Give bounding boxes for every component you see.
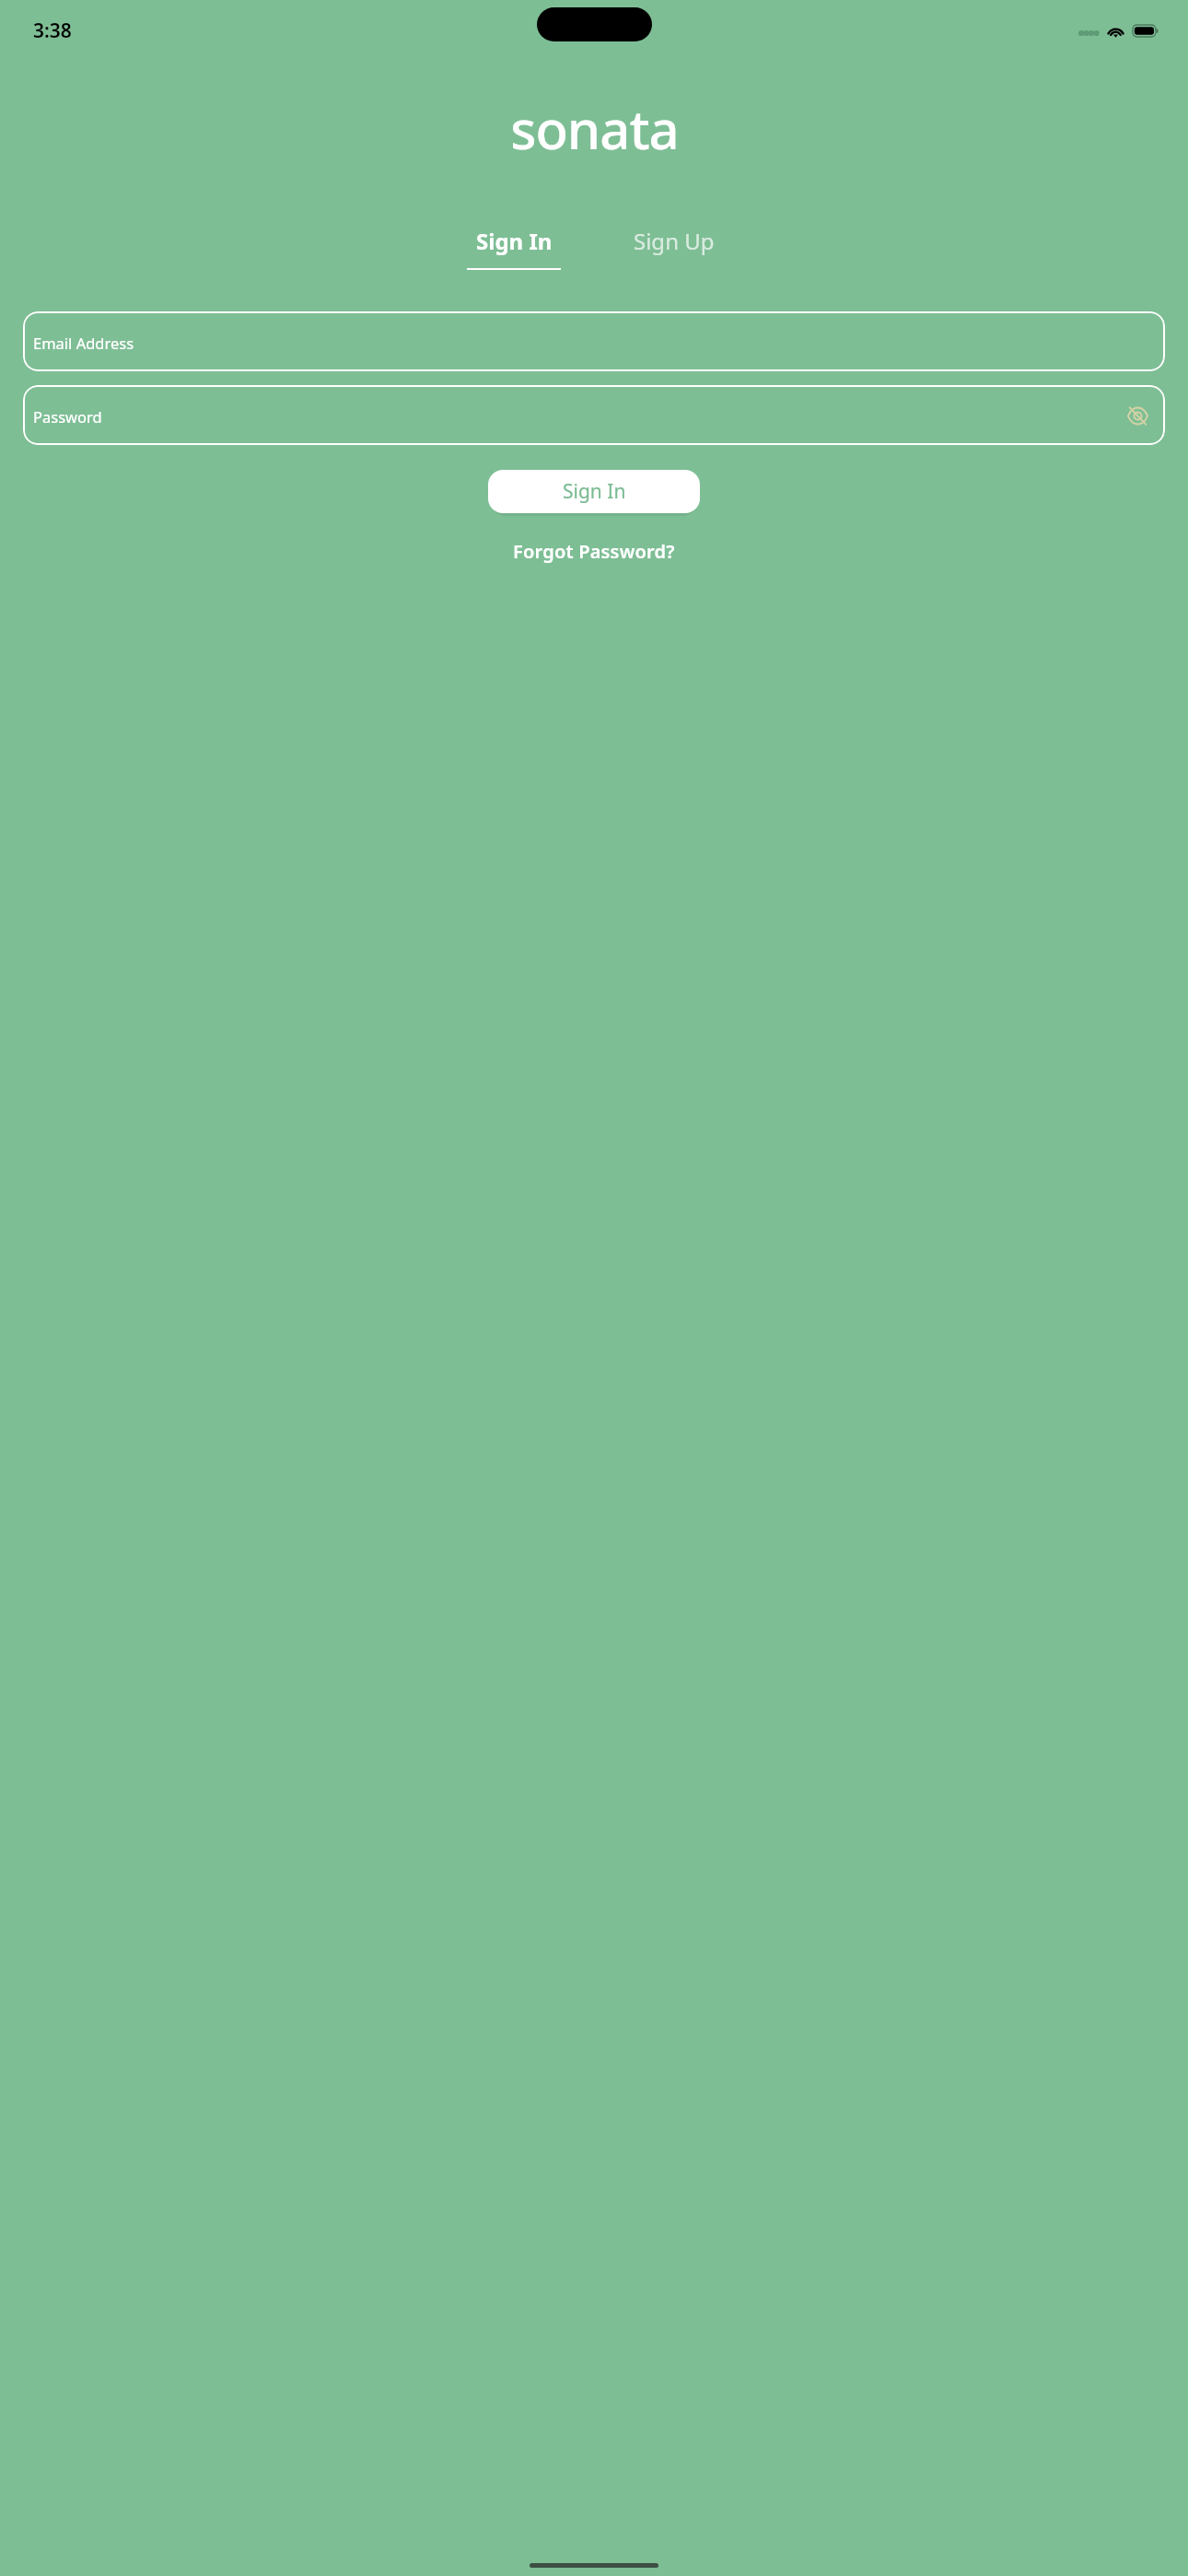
staticText: Email Address	[33, 333, 134, 353]
button[interactable]: Sign In	[454, 226, 574, 270]
button[interactable]: Email Address	[23, 311, 1165, 371]
staticText: Sign Up	[634, 226, 715, 256]
button[interactable]: Forgot Password?	[504, 533, 684, 569]
staticText: sonata	[510, 92, 679, 165]
button[interactable]: Sign Up	[614, 226, 734, 270]
staticText: Sign In	[563, 478, 626, 505]
staticText: 3:38	[33, 18, 72, 44]
staticText: Forgot Password?	[513, 539, 675, 564]
button[interactable]: Sign In	[488, 470, 700, 513]
staticText: Sign In	[476, 226, 553, 256]
button[interactable]: Password	[23, 385, 1165, 445]
button[interactable]: Show password	[1119, 397, 1156, 434]
staticText: Password	[33, 406, 102, 427]
